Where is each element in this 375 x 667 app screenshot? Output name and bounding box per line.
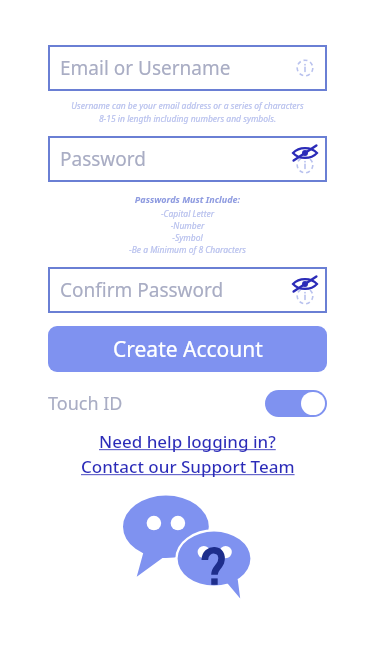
- staticText: Confirm Password: [60, 277, 224, 303]
- staticText: Create Account: [113, 335, 263, 364]
- staticText: Password: [60, 146, 146, 172]
- staticText: Contact our Support Team: [81, 455, 295, 478]
- button[interactable]: Email or Username: [48, 45, 327, 91]
- button[interactable]: Info: [290, 53, 320, 83]
- staticText: Touch ID: [48, 391, 123, 416]
- button[interactable]: Password: [48, 136, 327, 182]
- button[interactable]: Create Account: [48, 326, 327, 372]
- button[interactable]: Need help logging in?: [0, 430, 375, 478]
- staticText: Email or Username: [60, 55, 231, 81]
- staticText: Username can be your email address or a …: [40, 100, 335, 125]
- button[interactable]: Confirm Password: [48, 267, 327, 313]
- staticText: -Capital Letter -Number -Symbol -Be a Mi…: [0, 208, 375, 256]
- button[interactable]: Touch ID: [48, 386, 327, 420]
- button[interactable]: Show password: [290, 144, 320, 174]
- other: Touch ID toggle: [265, 390, 327, 417]
- staticText: Need help logging in?: [99, 430, 276, 453]
- button[interactable]: Show password: [290, 275, 320, 305]
- staticText: Passwords Must Include:: [0, 193, 375, 205]
